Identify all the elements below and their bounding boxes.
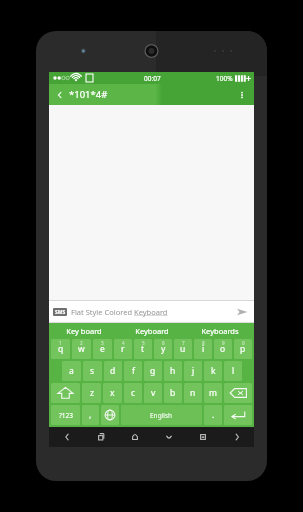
staticText: 100% — [216, 74, 233, 83]
staticText: x — [110, 387, 115, 399]
button[interactable]: Hide keyboard — [152, 427, 186, 447]
button[interactable]: Forward — [220, 427, 254, 447]
button[interactable]: Enter — [224, 405, 252, 425]
button[interactable]: s — [83, 361, 102, 381]
button[interactable]: Recents — [84, 427, 118, 447]
button[interactable]: y — [154, 339, 172, 359]
staticText: y — [161, 343, 166, 355]
staticText: . — [212, 409, 215, 421]
staticText: w — [78, 343, 85, 355]
button[interactable]: a — [62, 361, 81, 381]
button[interactable]: ?123 — [51, 405, 80, 425]
button[interactable]: Home — [118, 427, 152, 447]
staticText: q — [58, 343, 64, 355]
staticText: 6 — [162, 340, 165, 346]
staticText: English — [150, 411, 173, 420]
staticText: 00:07 — [144, 74, 161, 83]
button[interactable]: u — [174, 339, 192, 359]
button[interactable]: w — [72, 339, 91, 359]
button[interactable]: Switch keyboard — [186, 427, 220, 447]
button[interactable]: Backspace — [224, 383, 252, 403]
staticText: m — [209, 387, 217, 399]
staticText: 7 — [182, 340, 185, 346]
staticText: , — [89, 409, 92, 421]
staticText: o — [220, 343, 226, 355]
button[interactable]: SMS type — [53, 308, 67, 316]
button[interactable]: p — [234, 339, 252, 359]
button[interactable]: j — [184, 361, 202, 381]
staticText: 5 — [142, 340, 145, 346]
staticText: e — [100, 343, 105, 355]
staticText: Flat Style Colored — [71, 307, 134, 317]
staticText: *101*4# — [69, 88, 108, 101]
button[interactable]: m — [204, 383, 222, 403]
staticText: s — [90, 365, 95, 377]
button[interactable]: e — [93, 339, 112, 359]
staticText: Keyboard — [135, 326, 169, 336]
button[interactable]: Keyboard — [118, 323, 186, 338]
button[interactable]: Key board — [49, 323, 118, 338]
staticText: 8 — [202, 340, 205, 346]
staticText: n — [190, 387, 196, 399]
staticText: ?123 — [59, 411, 73, 420]
staticText: t — [141, 343, 145, 355]
staticText: h — [170, 365, 176, 377]
button[interactable]: Change keyboard language — [101, 405, 119, 425]
staticText: u — [180, 343, 186, 355]
button[interactable]: More options — [234, 87, 250, 103]
button[interactable]: x — [103, 383, 122, 403]
staticText: g — [150, 365, 156, 377]
button[interactable]: o — [214, 339, 232, 359]
staticText: SMS — [55, 309, 66, 316]
staticText: v — [151, 387, 156, 399]
button[interactable]: . — [204, 405, 222, 425]
button[interactable]: c — [124, 383, 142, 403]
button[interactable]: n — [184, 383, 202, 403]
button[interactable]: Back — [53, 88, 67, 102]
staticText: i — [202, 343, 205, 355]
button[interactable]: f — [124, 361, 142, 381]
button[interactable]: z — [82, 383, 101, 403]
button[interactable]: Keyboards — [186, 323, 254, 338]
button[interactable]: d — [104, 361, 122, 381]
staticText: f — [132, 365, 135, 377]
staticText: p — [240, 343, 246, 355]
button[interactable]: g — [144, 361, 162, 381]
button[interactable]: l — [224, 361, 242, 381]
button[interactable]: t — [134, 339, 152, 359]
staticText: c — [131, 387, 136, 399]
button[interactable]: v — [144, 383, 162, 403]
button[interactable]: h — [164, 361, 182, 381]
staticText: 1 — [59, 340, 62, 346]
staticText: j — [192, 365, 195, 377]
staticText: b — [170, 387, 176, 399]
button[interactable]: Send — [234, 304, 250, 320]
staticText: 0 — [242, 340, 245, 346]
staticText: 9 — [222, 340, 225, 346]
button[interactable]: Back — [49, 427, 84, 447]
staticText: 3 — [101, 340, 104, 346]
button[interactable]: , — [82, 405, 99, 425]
staticText: k — [211, 365, 216, 377]
staticText: r — [121, 343, 125, 355]
button[interactable]: i — [194, 339, 212, 359]
staticText: Keyboard — [134, 307, 168, 317]
button[interactable]: English — [121, 405, 202, 425]
button[interactable]: k — [204, 361, 222, 381]
staticText: a — [69, 365, 74, 377]
button[interactable]: Shift — [51, 383, 80, 403]
staticText: l — [232, 365, 235, 377]
button[interactable]: q — [51, 339, 70, 359]
staticText: Keyboards — [201, 326, 239, 336]
staticText: d — [110, 365, 116, 377]
staticText: Key board — [66, 326, 102, 336]
button[interactable]: b — [164, 383, 182, 403]
staticText: 4 — [122, 340, 125, 346]
button[interactable]: r — [114, 339, 132, 359]
staticText: z — [90, 387, 94, 399]
staticText: 2 — [80, 340, 83, 346]
